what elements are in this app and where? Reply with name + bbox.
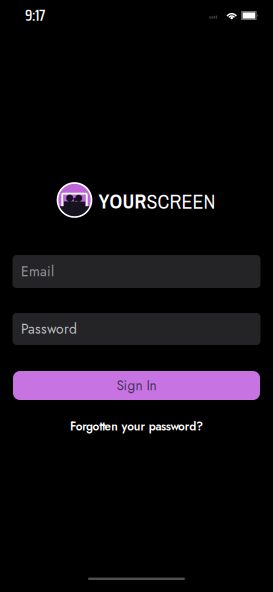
- staticText: Email: [21, 261, 54, 281]
- button[interactable]: Sign In: [13, 371, 260, 400]
- staticText: Password: [21, 319, 77, 339]
- staticText: YOUR: [98, 188, 146, 215]
- staticText: 9:17: [25, 3, 45, 27]
- staticText: SCREEN: [146, 188, 215, 215]
- staticText: Forgotten your password?: [70, 418, 203, 435]
- button[interactable]: Password: [12, 313, 260, 345]
- staticText: Sign In: [116, 376, 156, 395]
- button[interactable]: Email: [12, 255, 260, 288]
- button[interactable]: Forgotten your password?: [70, 419, 203, 434]
